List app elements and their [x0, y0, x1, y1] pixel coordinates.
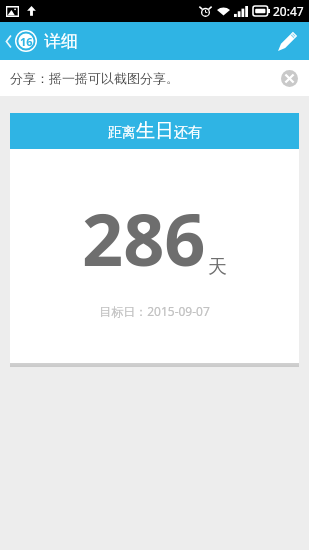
staticText: 20:47 [273, 3, 304, 19]
staticText: 天 [208, 255, 227, 279]
staticText: 距离生日还有 [108, 119, 202, 143]
button[interactable]: 距离生日还有 [10, 113, 299, 363]
staticText: 286 [82, 189, 206, 287]
other: Back [5, 34, 12, 49]
button[interactable]: Edit [266, 25, 309, 58]
staticText: 目标日：2015-09-07 [10, 303, 299, 319]
staticText: 分享：摇一摇可以截图分享。 [10, 70, 179, 86]
button[interactable]: Close [277, 66, 301, 90]
staticText: 16 [20, 34, 33, 49]
button[interactable]: Back [0, 26, 90, 56]
staticText: 详细 [44, 31, 78, 52]
